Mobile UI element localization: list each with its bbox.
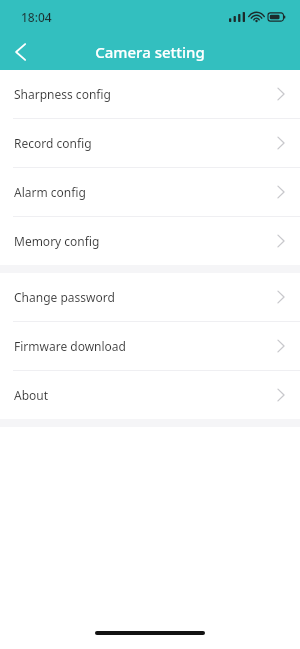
staticText: About	[14, 387, 49, 403]
staticText: Firmware download	[14, 338, 126, 354]
button[interactable]: Alarm config	[0, 168, 300, 216]
button[interactable]: Sharpness config	[0, 70, 300, 118]
staticText: 18:04	[21, 9, 52, 25]
button[interactable]: Memory config	[0, 217, 300, 265]
staticText: Alarm config	[14, 184, 86, 200]
staticText: Change password	[14, 289, 115, 305]
button[interactable]: Firmware download	[0, 322, 300, 370]
button[interactable]: Change password	[0, 273, 300, 321]
button[interactable]: About	[0, 371, 300, 419]
button[interactable]: Record config	[0, 119, 300, 167]
staticText: Sharpness config	[14, 86, 111, 102]
staticText: Memory config	[14, 233, 100, 249]
staticText: Record config	[14, 135, 92, 151]
staticText: Camera setting	[95, 42, 205, 62]
button[interactable]: Back	[0, 34, 40, 70]
